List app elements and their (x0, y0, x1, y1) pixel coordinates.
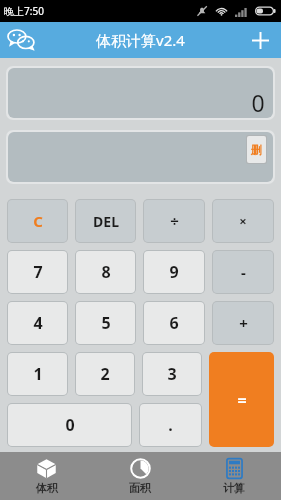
button[interactable]: DEL (76, 200, 135, 242)
staticText: 计算 (223, 481, 245, 495)
button[interactable]: 8 (76, 251, 135, 293)
staticText: 0 (251, 87, 265, 118)
button[interactable]: 删 (247, 136, 266, 163)
staticText: 体积 (36, 481, 58, 495)
button[interactable]: 7 (8, 251, 67, 293)
staticText: + (239, 313, 248, 333)
staticText: 6 (169, 312, 179, 334)
staticText: 删 (251, 143, 262, 157)
button[interactable]: ÷ (144, 200, 204, 242)
button[interactable]: C (8, 200, 67, 242)
staticText: C (33, 211, 43, 231)
staticText: 体积计算v2.4 (96, 30, 185, 50)
button[interactable]: 计算 (187, 452, 281, 500)
button[interactable]: 删 (8, 132, 273, 182)
staticText: 9 (169, 261, 179, 283)
button[interactable]: 9 (144, 251, 204, 293)
button[interactable]: 1 (8, 353, 67, 395)
staticText: 2 (100, 363, 110, 385)
button[interactable]: WeChat (3, 22, 39, 58)
button[interactable]: . (140, 404, 201, 446)
button[interactable]: 5 (76, 302, 135, 344)
button[interactable]: 4 (8, 302, 67, 344)
staticText: 晚上7:50 (4, 4, 44, 18)
staticText: DEL (93, 212, 119, 231)
button[interactable]: 6 (144, 302, 204, 344)
button[interactable]: - (213, 251, 273, 293)
staticText: 4 (33, 312, 43, 334)
staticText: ÷ (170, 211, 179, 231)
staticText: × (239, 212, 247, 230)
button[interactable]: 2 (76, 353, 134, 395)
staticText: 7 (33, 261, 43, 283)
button[interactable]: Add (244, 24, 276, 56)
button[interactable]: 体积 (0, 452, 93, 500)
button[interactable]: 0 (8, 404, 131, 446)
button[interactable]: + (213, 302, 273, 344)
staticText: 3 (167, 363, 177, 385)
staticText: 1 (33, 363, 43, 385)
button[interactable]: 3 (143, 353, 201, 395)
button[interactable]: 0 (8, 68, 273, 118)
staticText: = (237, 389, 247, 411)
staticText: 面积 (129, 481, 151, 495)
button[interactable]: 面积 (93, 452, 187, 500)
staticText: . (168, 414, 173, 436)
staticText: 8 (101, 261, 111, 283)
button[interactable]: × (213, 200, 273, 242)
staticText: 5 (101, 312, 111, 334)
button[interactable]: = (209, 352, 274, 447)
staticText: 0 (65, 414, 75, 436)
staticText: - (241, 262, 246, 282)
